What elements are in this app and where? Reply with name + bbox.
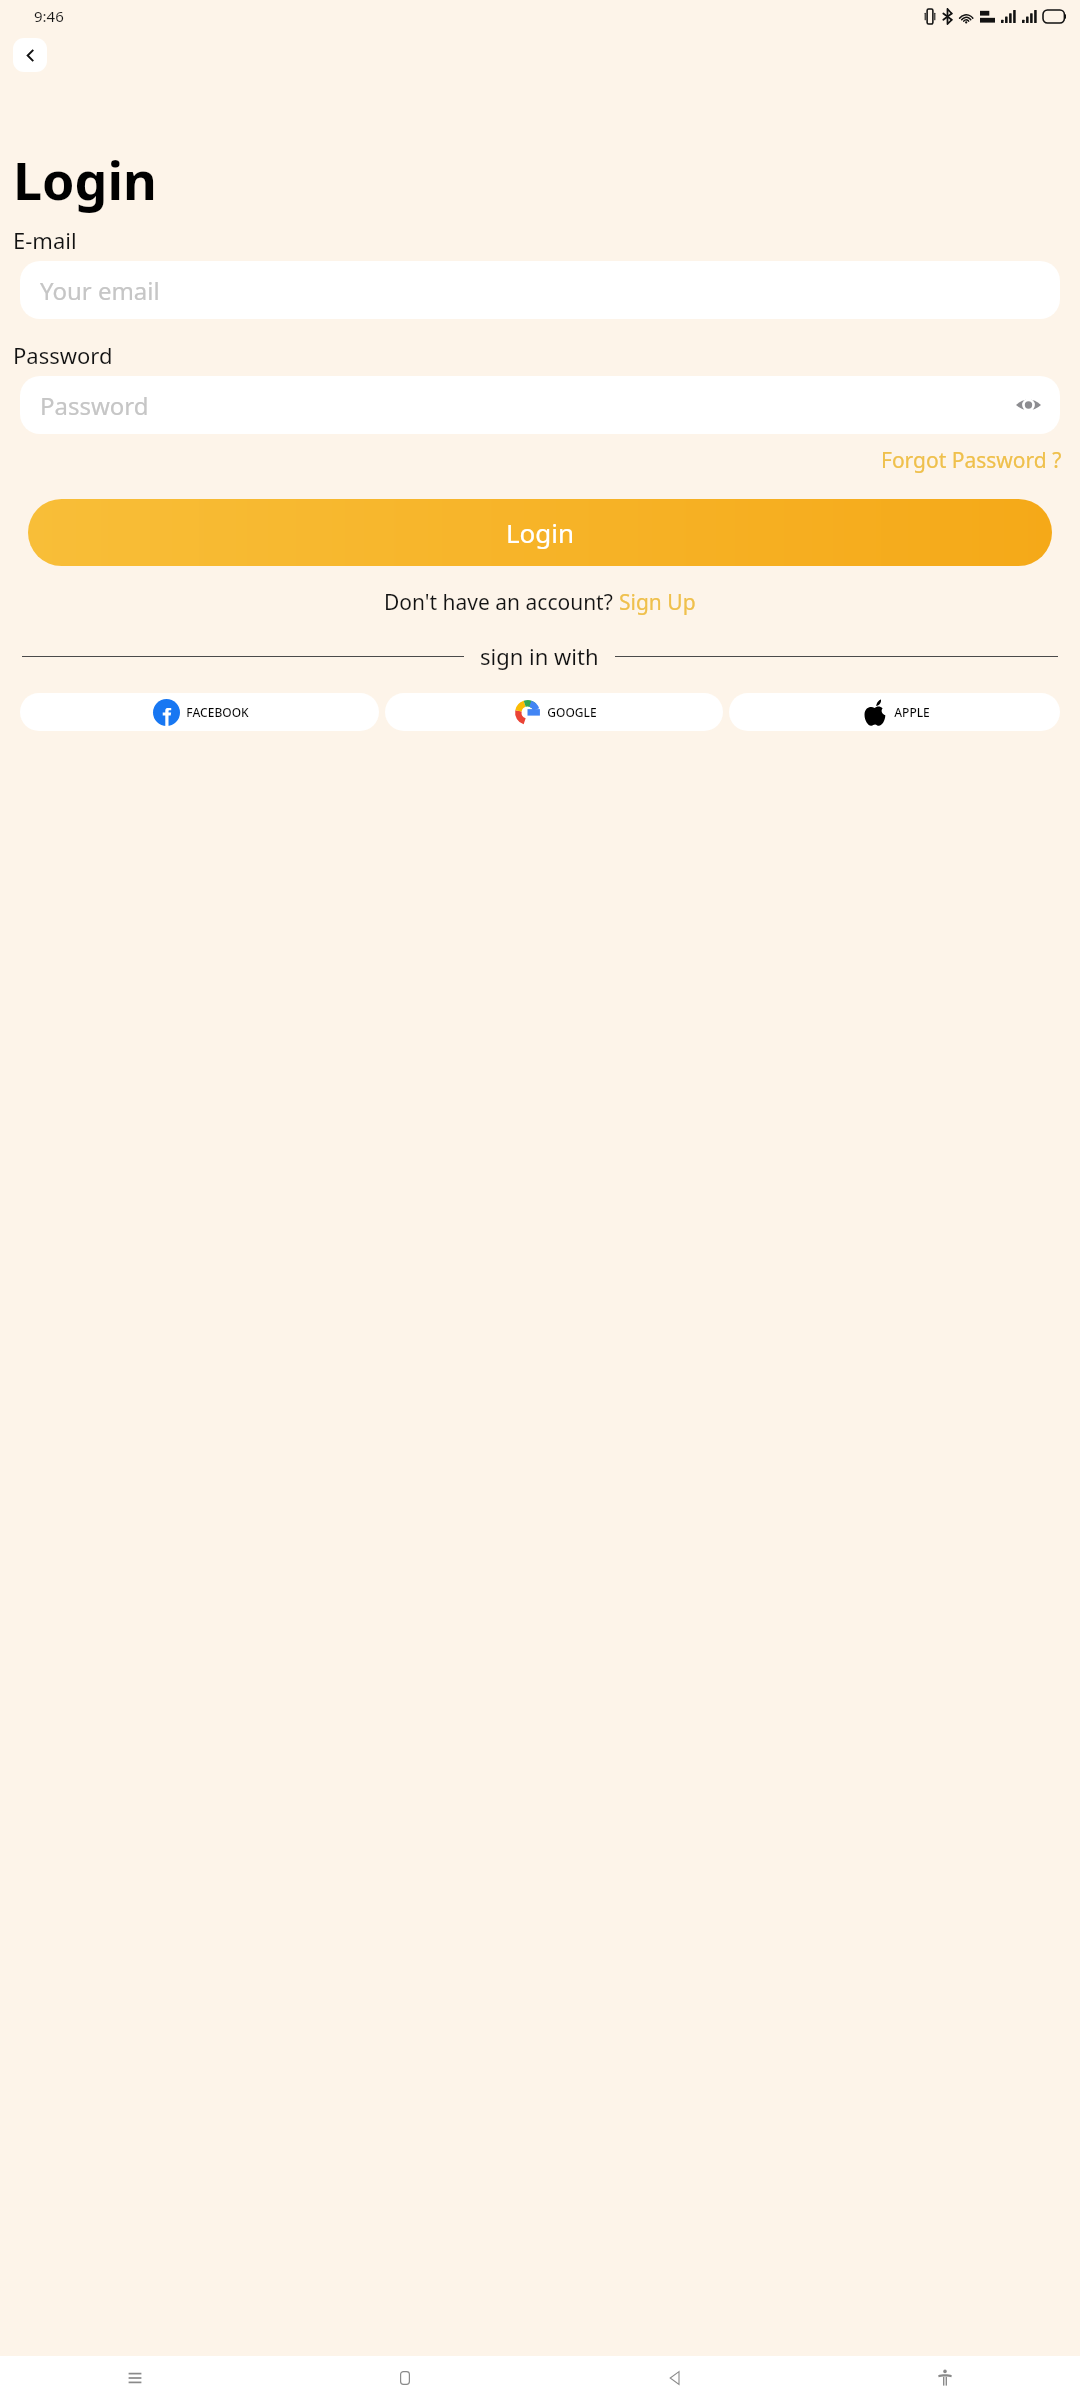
button[interactable]: FACEBOOK xyxy=(20,693,379,731)
staticText: GOOGLE xyxy=(547,704,597,720)
staticText: Your email xyxy=(40,274,160,307)
button[interactable]: Your email xyxy=(20,261,1060,319)
staticText: sign in with xyxy=(480,641,599,671)
button[interactable]: Home xyxy=(270,2356,540,2400)
staticText: 9:46 xyxy=(34,6,64,26)
staticText: Login xyxy=(13,144,157,215)
button[interactable]: Accessibility xyxy=(810,2356,1080,2400)
staticText: FACEBOOK xyxy=(186,704,249,720)
button[interactable]: Sign Up xyxy=(619,588,696,617)
button[interactable]: Forgot Password ? xyxy=(879,444,1064,477)
button[interactable]: Back xyxy=(13,38,47,72)
button[interactable]: Login xyxy=(28,499,1052,566)
staticText: Login xyxy=(506,515,575,550)
staticText: Password xyxy=(40,389,149,422)
button[interactable]: Back xyxy=(540,2356,810,2400)
staticText: APPLE xyxy=(894,704,930,720)
button[interactable]: APPLE xyxy=(729,693,1060,731)
staticText: Sign Up xyxy=(619,588,696,617)
button[interactable]: Show password xyxy=(1010,387,1046,423)
button[interactable]: Recent apps xyxy=(0,2356,270,2400)
staticText: Forgot Password ? xyxy=(881,446,1062,475)
staticText: Don't have an account? xyxy=(384,588,619,617)
staticText: E-mail xyxy=(13,225,77,255)
staticText: Password xyxy=(13,340,113,370)
button[interactable]: Password xyxy=(20,376,1060,434)
button[interactable]: GOOGLE xyxy=(385,693,723,731)
